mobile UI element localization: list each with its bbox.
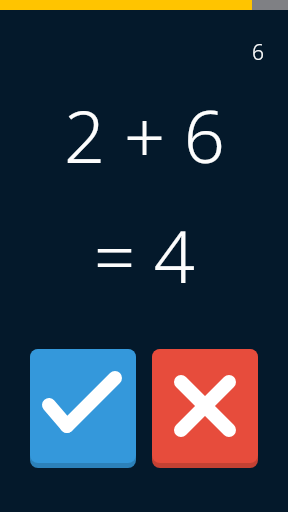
staticText: 2 + 6 <box>64 86 225 184</box>
staticText: = 4 <box>94 206 195 304</box>
button[interactable]: Correct <box>30 349 136 468</box>
staticText: 6 <box>252 38 264 67</box>
button[interactable]: Wrong <box>152 349 258 468</box>
